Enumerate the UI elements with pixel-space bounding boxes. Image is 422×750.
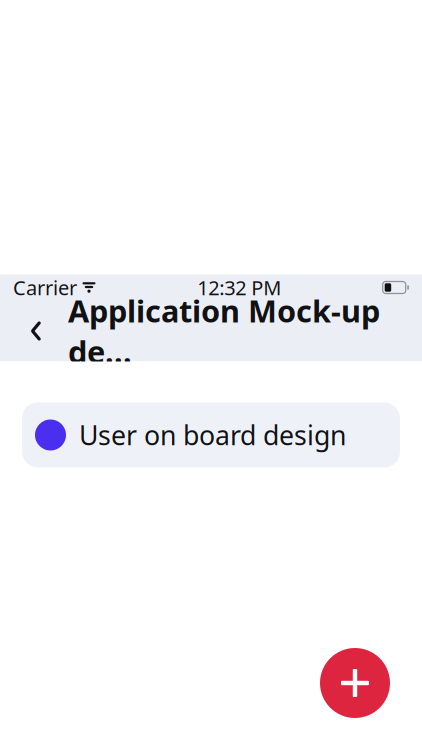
staticText: Application Mock-up de... xyxy=(68,290,380,372)
button[interactable]: Add task xyxy=(320,648,390,718)
button[interactable]: Back xyxy=(14,309,58,353)
button[interactable]: User on board design xyxy=(22,402,400,467)
staticText: User on board design xyxy=(79,417,346,453)
staticText: 12:32 PM xyxy=(197,274,281,301)
staticText: Carrier xyxy=(13,274,77,301)
